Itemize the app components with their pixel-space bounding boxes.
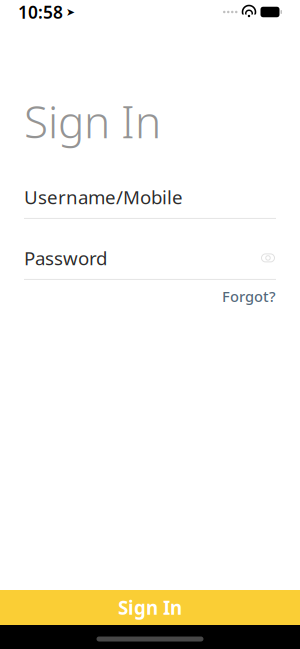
staticText: Sign In [118,595,182,620]
button[interactable]: Sign In [0,590,300,625]
staticText: Sign In [24,92,161,150]
button[interactable]: Forgot? [24,287,276,305]
staticText: ➤ [66,6,75,18]
staticText: Username/Mobile [24,184,183,209]
staticText: Forgot? [222,287,276,306]
staticText: Password [24,245,107,270]
staticText: 10:58 [18,0,63,23]
